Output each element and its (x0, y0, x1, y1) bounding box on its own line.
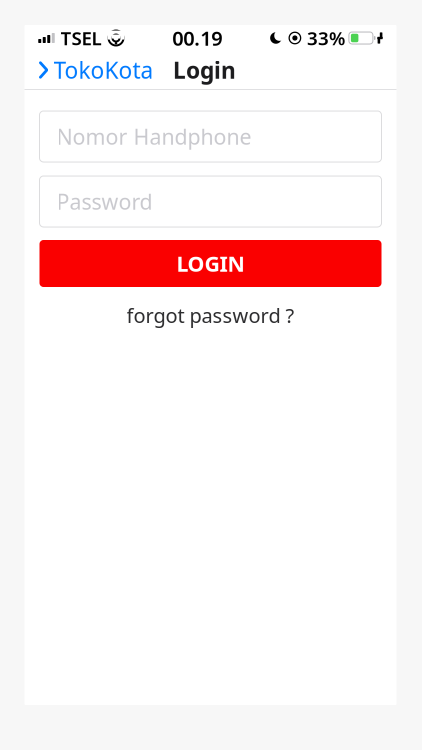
staticText: TSEL (60, 26, 101, 50)
staticText: forgot password ? (126, 302, 294, 329)
staticText: LOGIN (176, 249, 244, 278)
button[interactable]: forgot password ? (116, 297, 304, 334)
staticText: 33% (307, 26, 345, 50)
button[interactable]: TokoKota (35, 49, 155, 91)
staticText: 00.19 (172, 25, 222, 51)
staticText: Login (173, 55, 236, 85)
staticText: Password (56, 187, 152, 216)
staticText: Nomor Handphone (56, 122, 251, 151)
staticText: TokoKota (53, 55, 153, 85)
button[interactable]: LOGIN (39, 240, 381, 287)
